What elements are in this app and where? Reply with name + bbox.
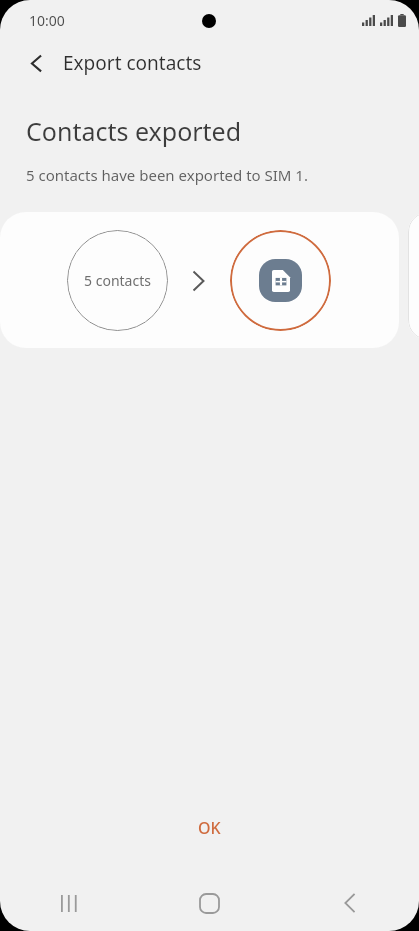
staticText: 10:00 [29,11,65,30]
button[interactable]: Back [14,41,58,85]
staticText: 5 contacts [84,271,151,290]
staticText: 5 contacts have been exported to SIM 1. [26,165,308,185]
button[interactable]: 5 contacts [0,212,399,348]
staticText: OK [198,817,221,839]
staticText: Export contacts [63,50,202,76]
button[interactable]: Recent apps [0,875,139,931]
staticText: Contacts exported [26,114,242,148]
button[interactable]: Home [139,875,279,931]
button[interactable]: Back [279,875,419,931]
button[interactable]: OK [168,808,251,848]
